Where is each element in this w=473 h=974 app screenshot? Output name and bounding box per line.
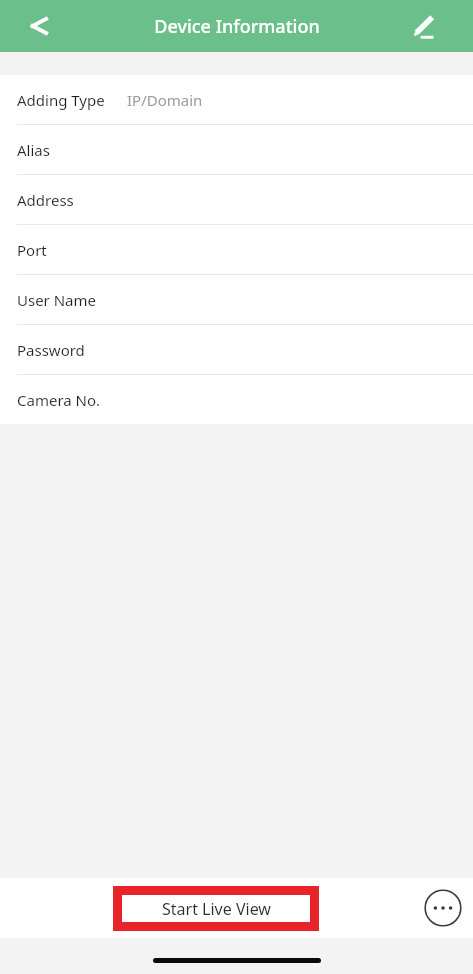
button[interactable]: Back [21, 9, 55, 43]
button[interactable]: Camera No. [0, 375, 473, 424]
staticText: User Name [17, 290, 97, 310]
staticText: Address [17, 190, 74, 210]
staticText: Port [17, 240, 47, 260]
button[interactable]: User Name [0, 275, 473, 324]
button[interactable]: Port [0, 225, 473, 274]
staticText: Start Live View [162, 898, 271, 920]
staticText: Camera No. [17, 390, 101, 410]
button[interactable]: Adding Type [0, 75, 473, 124]
staticText: Alias [17, 140, 50, 160]
staticText: Password [17, 340, 85, 360]
staticText: Adding Type [17, 90, 105, 110]
staticText: Device Information [154, 14, 320, 39]
button[interactable]: Password [0, 325, 473, 374]
button[interactable]: Edit [407, 9, 441, 43]
button[interactable]: Start Live View [113, 886, 319, 931]
staticText: IP/Domain [127, 90, 203, 110]
button[interactable]: Address [0, 175, 473, 224]
button[interactable]: More options [421, 886, 465, 930]
button[interactable]: Alias [0, 125, 473, 174]
